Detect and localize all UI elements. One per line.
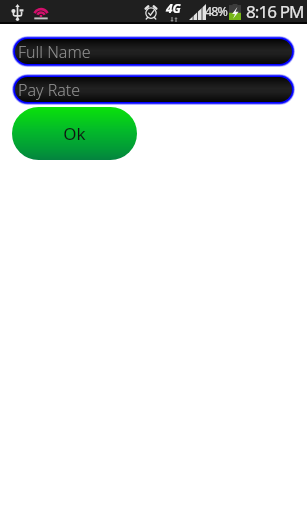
- staticText: 4G: [166, 0, 181, 16]
- button[interactable]: Pay Rate: [12, 74, 295, 105]
- staticText: 48%: [205, 3, 227, 20]
- staticText: Pay Rate: [18, 79, 81, 101]
- staticText: Ok: [63, 122, 86, 145]
- staticText: Full Name: [18, 41, 91, 63]
- button[interactable]: Full Name: [12, 36, 295, 67]
- staticText: 8:16 PM: [246, 0, 304, 23]
- button[interactable]: Ok: [12, 107, 137, 160]
